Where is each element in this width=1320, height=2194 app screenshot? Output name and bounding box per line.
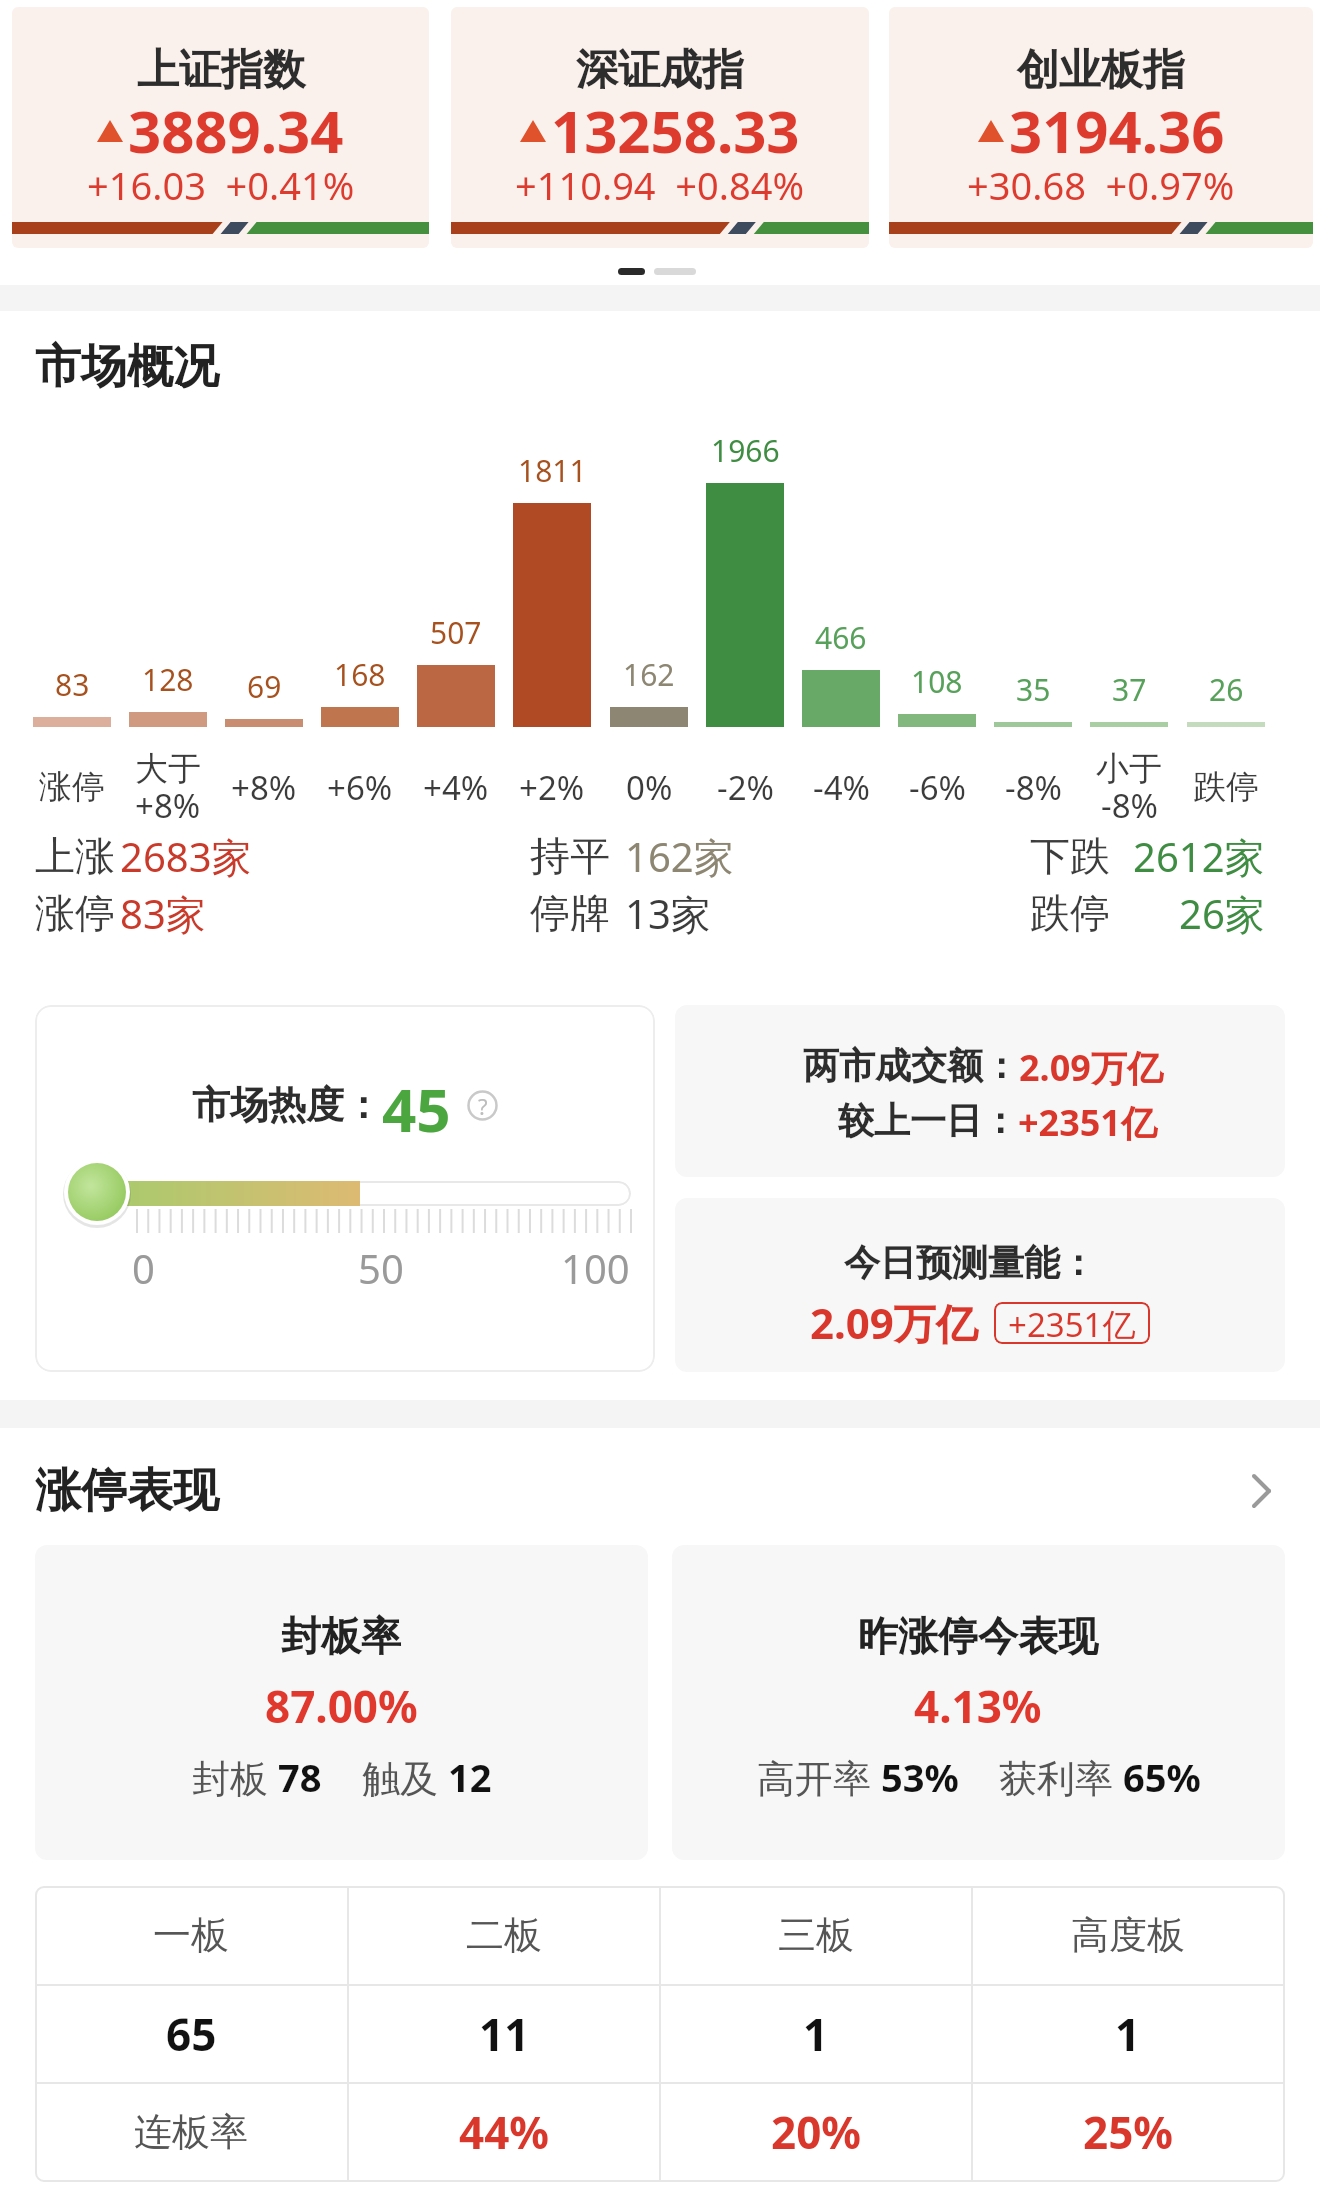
staticText: 连板率 <box>134 2108 248 2156</box>
staticText: 83 <box>55 664 90 705</box>
button[interactable] <box>35 1545 648 1860</box>
button[interactable] <box>675 1198 1285 1372</box>
staticText: 2683家 <box>120 829 252 884</box>
staticText: 上证指数 <box>137 44 305 97</box>
button[interactable] <box>0 1455 1320 1527</box>
staticText: +2% <box>519 765 585 810</box>
staticText: 高度板 <box>1071 1911 1185 1959</box>
staticText: 大于 <box>135 748 201 790</box>
button[interactable] <box>672 1545 1285 1860</box>
staticText: 83家 <box>120 886 206 941</box>
staticText: -8% <box>1005 765 1062 810</box>
button[interactable]: 深证成指 <box>451 7 869 248</box>
staticText: 4.13% <box>914 1676 1042 1736</box>
button[interactable] <box>675 1005 1285 1177</box>
staticText: 高开率 <box>757 1751 881 1803</box>
staticText: 1966 <box>711 430 780 471</box>
staticText: 26 <box>1209 669 1244 710</box>
staticText: +4% <box>423 765 489 810</box>
staticText: +110.94 +0.84% <box>515 159 805 211</box>
staticText: 今日预测量能： <box>844 1240 1096 1285</box>
staticText: 44% <box>459 2102 550 2162</box>
staticText: -8% <box>1101 783 1158 828</box>
staticText: 0% <box>626 765 673 810</box>
staticText: 封板率 <box>281 1611 401 1661</box>
staticText: 26家 <box>1179 886 1265 941</box>
staticText: +8% <box>135 783 201 828</box>
staticText: 45 <box>382 1068 451 1142</box>
staticText: 13258.33 <box>551 91 800 170</box>
staticText: -4% <box>813 765 870 810</box>
staticText: 创业板指 <box>1017 44 1185 97</box>
staticText: 507 <box>430 612 482 653</box>
staticText: 一板 <box>153 1911 229 1959</box>
staticText: 2.09万亿 <box>810 1294 978 1351</box>
staticText: 0 <box>132 1241 155 1295</box>
staticText: 162 <box>623 654 675 695</box>
staticText: 78 <box>278 1751 322 1803</box>
button[interactable]: 创业板指 <box>889 7 1313 248</box>
staticText: 昨涨停今表现 <box>858 1611 1098 1661</box>
staticText: 87.00% <box>265 1676 418 1736</box>
staticText: 涨停 <box>35 888 115 938</box>
staticText: +6% <box>327 765 393 810</box>
staticText: 上涨 <box>35 831 115 881</box>
staticText: 较上一日： <box>838 1098 1018 1143</box>
staticText: 下跌 <box>1030 831 1110 881</box>
staticText: 深证成指 <box>576 44 744 97</box>
staticText: 2.09万亿 <box>1019 1043 1163 1092</box>
staticText: +8% <box>231 765 297 810</box>
staticText: 11 <box>479 2004 530 2064</box>
staticText: 跌停 <box>1030 888 1110 938</box>
staticText: 65% <box>1123 1751 1201 1803</box>
staticText: 1811 <box>518 450 587 491</box>
button[interactable] <box>35 1886 1285 2182</box>
staticText: 1 <box>1115 2004 1141 2064</box>
staticText: 封板 <box>192 1751 278 1803</box>
staticText: 3194.36 <box>1009 91 1225 170</box>
staticText: 获利率 <box>999 1751 1123 1803</box>
staticText: 持平 <box>530 831 610 881</box>
staticText: -2% <box>717 765 774 810</box>
staticText: ? <box>478 1091 488 1121</box>
staticText: +2351亿 <box>1018 1098 1157 1147</box>
staticText: 69 <box>247 666 282 707</box>
button[interactable] <box>35 1005 655 1372</box>
staticText: 162家 <box>625 829 734 884</box>
staticText: 触及 <box>362 1751 448 1803</box>
staticText: 市场热度： <box>192 1081 382 1129</box>
staticText: 二板 <box>466 1911 542 1959</box>
staticText: 两市成交额： <box>803 1043 1019 1088</box>
staticText: -6% <box>909 765 966 810</box>
staticText: 涨停 <box>39 766 105 808</box>
staticText: 25% <box>1083 2102 1174 2162</box>
button[interactable]: 上证指数 <box>12 7 429 248</box>
staticText: 108 <box>911 661 963 702</box>
staticText: 50 <box>358 1241 404 1295</box>
staticText: 跌停 <box>1193 766 1259 808</box>
staticText: 3889.34 <box>128 91 344 170</box>
staticText: 168 <box>334 654 386 695</box>
staticText: 128 <box>142 659 194 700</box>
staticText: 37 <box>1112 669 1147 710</box>
staticText: +16.03 +0.41% <box>87 159 355 211</box>
staticText: 停牌 <box>530 888 610 938</box>
staticText: 35 <box>1016 669 1051 710</box>
staticText: 小于 <box>1096 748 1162 790</box>
staticText: 53% <box>881 1751 959 1803</box>
staticText: 65 <box>166 2004 217 2064</box>
staticText: 市场概况 <box>35 338 219 396</box>
staticText: 20% <box>771 2102 862 2162</box>
staticText: 100 <box>561 1241 630 1295</box>
staticText: 三板 <box>778 1911 854 1959</box>
staticText: 1 <box>803 2004 829 2064</box>
staticText: +2351亿 <box>1008 1302 1136 1344</box>
staticText: 466 <box>815 617 867 658</box>
staticText: 涨停表现 <box>35 1462 219 1520</box>
staticText: 12 <box>448 1751 492 1803</box>
staticText: 2612家 <box>1133 829 1265 884</box>
staticText: 13家 <box>625 886 711 941</box>
staticText: +30.68 +0.97% <box>967 159 1235 211</box>
